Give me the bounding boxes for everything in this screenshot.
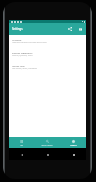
button[interactable]: Recents xyxy=(69,150,78,159)
button[interactable]: Account xyxy=(9,38,86,51)
staticText: Account xyxy=(12,38,22,41)
staticText: Settings xyxy=(12,27,65,31)
staticText: Search Report xyxy=(41,144,53,146)
staticText: Monthly, Quarterly, Yearly xyxy=(12,54,33,56)
staticText: About App xyxy=(12,64,25,67)
staticText: List xyxy=(20,144,23,146)
button[interactable]: Payout frequency xyxy=(9,51,86,64)
button[interactable]: Settings xyxy=(60,137,86,148)
button[interactable]: Home xyxy=(43,150,52,159)
button[interactable]: Back xyxy=(17,150,26,159)
button[interactable]: Notes xyxy=(75,24,85,34)
button[interactable]: List xyxy=(9,137,34,148)
button[interactable]: Search Report xyxy=(34,137,60,148)
button[interactable]: Share xyxy=(65,24,75,34)
staticText: Login and manage your Profile and accoun… xyxy=(12,41,47,43)
staticText: App Version, Terms, Changelog xyxy=(12,67,37,69)
button[interactable]: About App xyxy=(9,64,86,77)
staticText: Settings xyxy=(70,144,77,146)
staticText: Payout frequency xyxy=(12,51,33,54)
